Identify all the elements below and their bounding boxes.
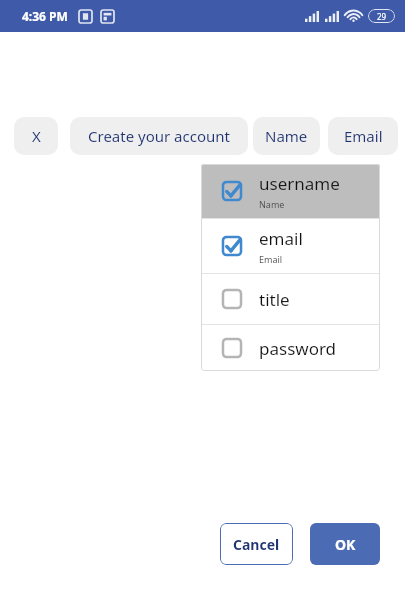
- staticText: 29: [377, 11, 387, 22]
- button[interactable]: Name: [253, 117, 320, 155]
- button[interactable]: Email: [328, 117, 398, 155]
- staticText: title: [259, 288, 290, 311]
- staticText: password: [259, 337, 337, 360]
- staticText: Cancel: [233, 535, 280, 554]
- staticText: Create your account: [88, 126, 230, 146]
- staticText: 4:36 PM: [22, 8, 68, 24]
- other: Checked: [221, 235, 243, 257]
- other: Unchecked: [221, 337, 243, 359]
- button[interactable]: Create your account: [70, 117, 248, 155]
- staticText: Email: [259, 253, 283, 265]
- staticText: Name: [259, 198, 285, 210]
- staticText: Email: [344, 126, 383, 146]
- staticText: username: [259, 172, 340, 195]
- staticText: OK: [335, 535, 356, 554]
- button[interactable]: OK: [310, 523, 380, 565]
- staticText: email: [259, 227, 303, 250]
- other: Unchecked: [221, 288, 243, 310]
- button[interactable]: Checked: [201, 219, 380, 273]
- other: Checked: [221, 180, 243, 202]
- button[interactable]: Checked: [201, 164, 380, 218]
- button[interactable]: Unchecked: [201, 274, 380, 324]
- staticText: X: [32, 126, 41, 146]
- button[interactable]: X: [14, 117, 58, 155]
- button[interactable]: Cancel: [220, 523, 293, 565]
- staticText: Name: [265, 126, 308, 146]
- button[interactable]: Unchecked: [201, 325, 380, 371]
